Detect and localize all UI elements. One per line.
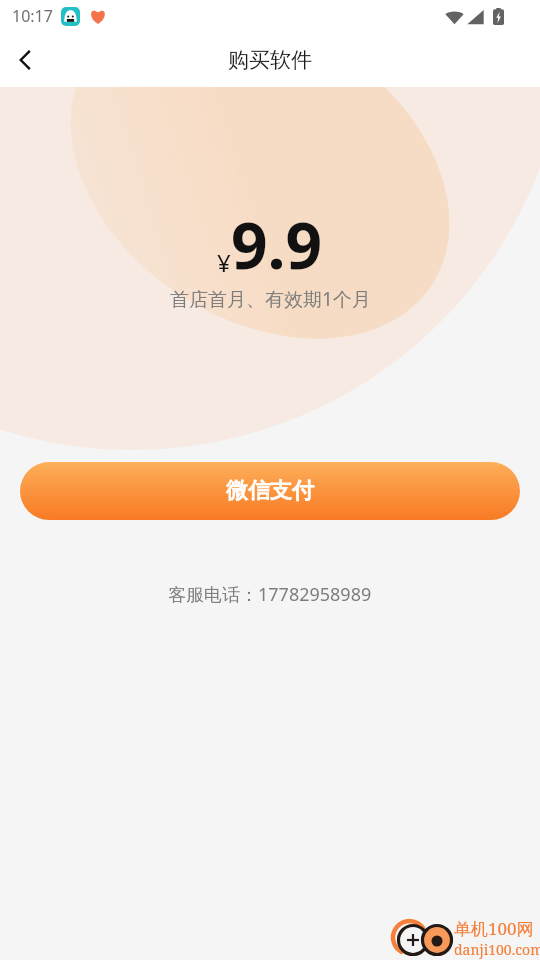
staticText: 客服电话：17782958989 bbox=[168, 582, 372, 607]
staticText: danji100.com bbox=[454, 940, 540, 959]
button[interactable]: Back bbox=[0, 34, 52, 86]
staticText: 微信支付 bbox=[226, 477, 314, 505]
staticText: 9.9 bbox=[231, 201, 323, 288]
staticText: 10:17 bbox=[12, 5, 53, 27]
staticText: 购买软件 bbox=[228, 47, 312, 73]
button[interactable]: 微信支付 bbox=[20, 462, 520, 520]
staticText: 单机100网 bbox=[454, 917, 534, 940]
staticText: ¥ bbox=[217, 246, 231, 279]
staticText: 首店首月、有效期1个月 bbox=[170, 286, 371, 312]
